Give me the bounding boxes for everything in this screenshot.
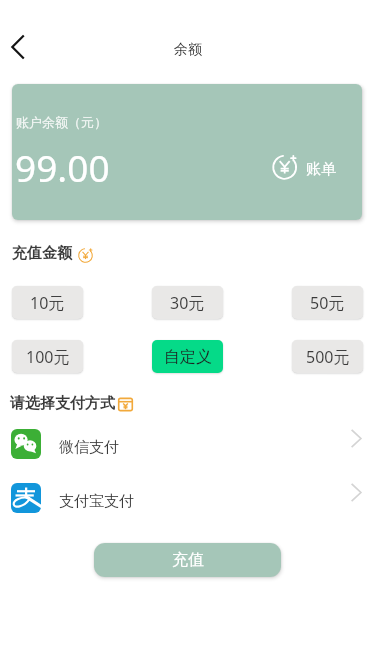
button[interactable]: 500元 [292, 340, 363, 373]
staticText: 账户余额（元） [16, 114, 107, 130]
staticText: 微信支付 [59, 438, 119, 457]
button[interactable]: 账单 [268, 150, 348, 182]
staticText: 50元 [310, 292, 345, 314]
staticText: 充值 [172, 550, 204, 570]
staticText: 余额 [174, 41, 202, 59]
staticText: 充值金额 [12, 244, 72, 263]
button[interactable]: 30元 [152, 286, 223, 319]
staticText: 30元 [170, 292, 205, 314]
button[interactable]: 支付宝支付 [0, 471, 375, 524]
staticText: 支付宝支付 [59, 492, 134, 511]
staticText: 自定义 [164, 347, 212, 367]
button[interactable]: 充值 [94, 543, 281, 577]
staticText: 100元 [26, 346, 70, 368]
staticText: 99.00 [15, 142, 110, 192]
staticText: 10元 [30, 292, 65, 314]
staticText: 账单 [306, 160, 336, 179]
button[interactable]: 10元 [12, 286, 83, 319]
button[interactable]: 自定义 [152, 340, 223, 373]
staticText: 500元 [306, 346, 350, 368]
button[interactable]: 账户余额（元） [12, 84, 362, 220]
button[interactable]: 微信支付 [0, 417, 375, 470]
button[interactable]: 50元 [292, 286, 363, 319]
button[interactable]: 100元 [12, 340, 83, 373]
staticText: 请选择支付方式 [10, 394, 115, 413]
button[interactable]: Back [0, 27, 40, 67]
